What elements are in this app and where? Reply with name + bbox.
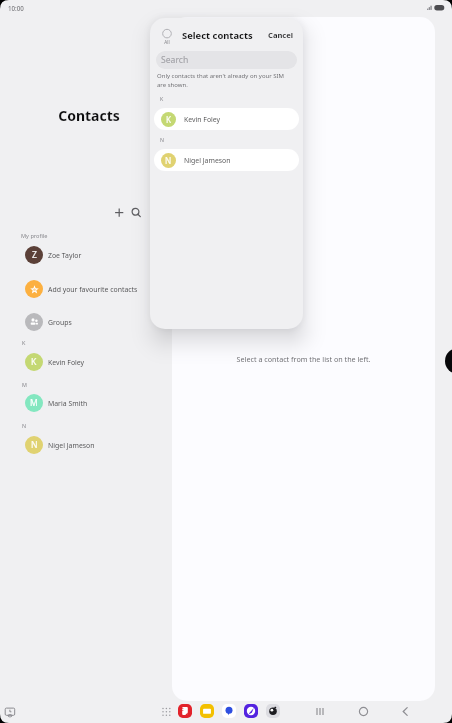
staticText: Select contacts [182, 29, 253, 42]
staticText: Add your favourite contacts [48, 285, 138, 294]
staticText: All [159, 39, 175, 45]
button[interactable]: N [154, 149, 299, 171]
staticText: N [160, 136, 164, 143]
staticText: N [165, 155, 172, 166]
button[interactable]: All apps [160, 705, 173, 718]
staticText: N [31, 439, 38, 451]
button[interactable]: Select all [159, 24, 175, 45]
button[interactable]: Search contacts [127, 203, 145, 221]
staticText: Only contacts that aren't already on you… [157, 72, 285, 89]
button[interactable]: Search [156, 51, 297, 69]
button[interactable]: Office [178, 704, 192, 718]
button[interactable]: Create contact [110, 203, 128, 221]
staticText: M [22, 381, 27, 388]
staticText: N [22, 422, 27, 429]
button[interactable]: My Files [200, 704, 214, 718]
button[interactable]: Edge panel handle [445, 348, 452, 374]
button[interactable]: K [154, 108, 299, 130]
button[interactable]: DeX mode [2, 704, 18, 720]
button[interactable]: Internet [244, 704, 258, 718]
button[interactable]: M [0, 388, 172, 418]
staticText: Nigel Jameson [48, 441, 95, 450]
staticText: My profile [21, 232, 48, 240]
button[interactable]: Add your favourite contacts [0, 274, 172, 304]
staticText: Select a contact from the list on the le… [172, 354, 435, 364]
button[interactable]: Z [0, 240, 172, 270]
staticText: Nigel Jameson [184, 156, 231, 165]
button[interactable]: Home [353, 701, 374, 722]
staticText: K [31, 356, 37, 368]
staticText: K [22, 339, 26, 346]
button[interactable]: K [0, 347, 172, 377]
button[interactable]: Groups [0, 307, 172, 337]
staticText: K [160, 95, 164, 102]
staticText: Groups [48, 318, 72, 327]
staticText: M [30, 397, 38, 409]
staticText: Kevin Foley [184, 115, 221, 124]
staticText: Contacts [0, 106, 178, 125]
staticText: K [166, 114, 172, 125]
staticText: Maria Smith [48, 399, 88, 408]
button[interactable]: Camera [266, 704, 280, 718]
staticText: Z [32, 249, 37, 261]
staticText: 10:00 [8, 4, 24, 12]
staticText: Cancel [268, 30, 294, 40]
staticText: Zoe Taylor [48, 251, 82, 260]
staticText: Search [161, 54, 189, 66]
staticText: Kevin Foley [48, 358, 85, 367]
button[interactable]: Messages [222, 704, 236, 718]
button[interactable]: Back [395, 701, 416, 722]
button[interactable]: Recent apps [310, 701, 331, 722]
button[interactable]: N [0, 430, 172, 460]
button[interactable]: Cancel [265, 26, 297, 44]
